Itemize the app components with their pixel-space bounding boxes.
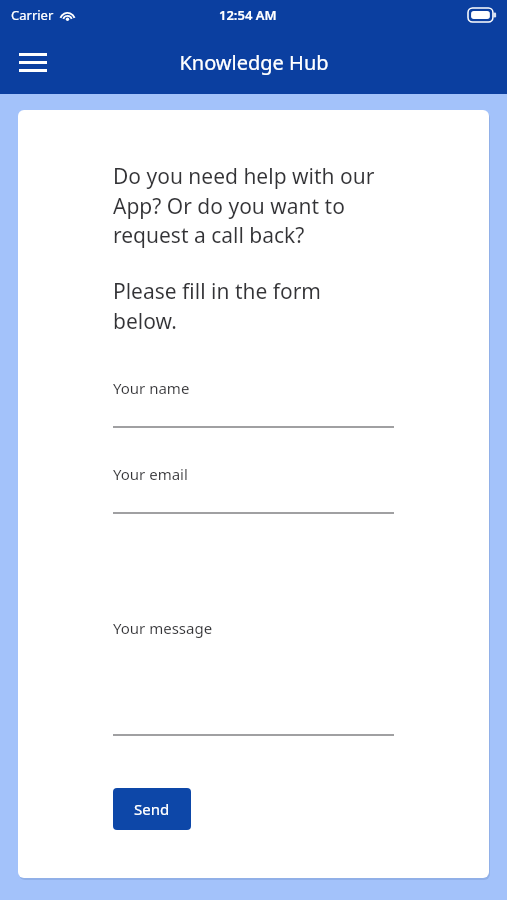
button[interactable]: Your message — [113, 618, 394, 736]
staticText: Knowledge Hub — [179, 49, 329, 76]
staticText: 12:54 AM — [219, 6, 277, 24]
staticText: Your name — [113, 378, 190, 398]
staticText: Carrier — [11, 6, 54, 24]
staticText: Please fill in the form below. — [113, 277, 343, 335]
button[interactable]: Your name — [113, 378, 394, 428]
button[interactable]: Open navigation menu — [10, 39, 56, 85]
staticText: Your email — [113, 464, 188, 484]
staticText: Your message — [113, 618, 213, 638]
staticText: Do you need help with our App? Or do you… — [113, 162, 403, 249]
staticText: Send — [134, 799, 170, 819]
button[interactable]: Your email — [113, 464, 394, 514]
button[interactable]: Send — [113, 788, 191, 830]
